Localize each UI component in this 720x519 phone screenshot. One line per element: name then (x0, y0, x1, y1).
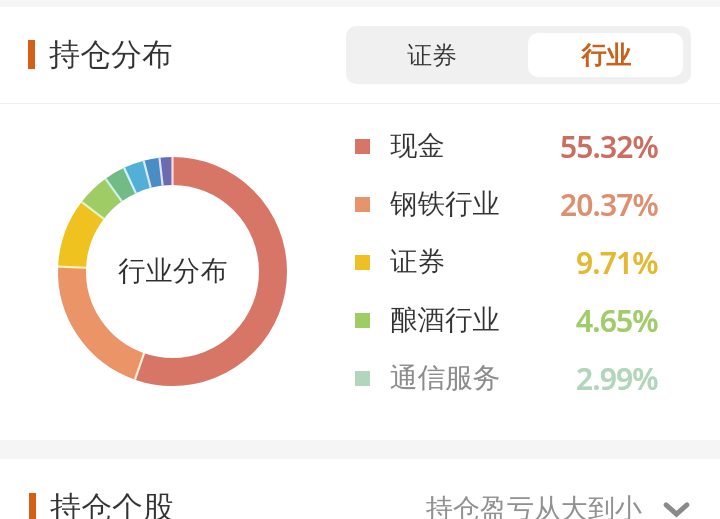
staticText: 20.37% (560, 184, 658, 225)
button[interactable]: 证券 (355, 233, 658, 291)
staticText: 通信服务 (390, 361, 500, 396)
staticText: 持仓分布 (49, 35, 173, 74)
button[interactable]: 持仓盈亏从大到小 (426, 492, 691, 519)
staticText: 持仓盈亏从大到小 (426, 492, 642, 519)
staticText: 55.32% (560, 126, 658, 167)
staticText: 证券 (390, 245, 445, 280)
staticText: 9.71% (576, 242, 658, 283)
staticText: 2.99% (576, 358, 658, 399)
staticText: 4.65% (576, 300, 658, 341)
button[interactable]: 持仓个股 (28, 481, 152, 519)
staticText: 持仓个股 (50, 488, 174, 519)
other: Sort order (662, 495, 691, 519)
staticText: 证券 (407, 40, 457, 71)
staticText: 现金 (390, 129, 445, 164)
button[interactable]: 酿酒行业 (355, 291, 658, 349)
button[interactable]: 证券 (346, 26, 518, 84)
button[interactable]: 行业 (528, 33, 683, 77)
staticText: 行业分布 (118, 254, 228, 289)
button[interactable]: 钢铁行业 (355, 175, 658, 233)
staticText: 行业 (581, 40, 631, 71)
staticText: 钢铁行业 (390, 187, 500, 222)
staticText: 酿酒行业 (390, 303, 500, 338)
button[interactable]: 持仓分布 (27, 28, 151, 81)
button[interactable]: 现金 (355, 117, 658, 175)
button[interactable]: 通信服务 (355, 349, 658, 407)
